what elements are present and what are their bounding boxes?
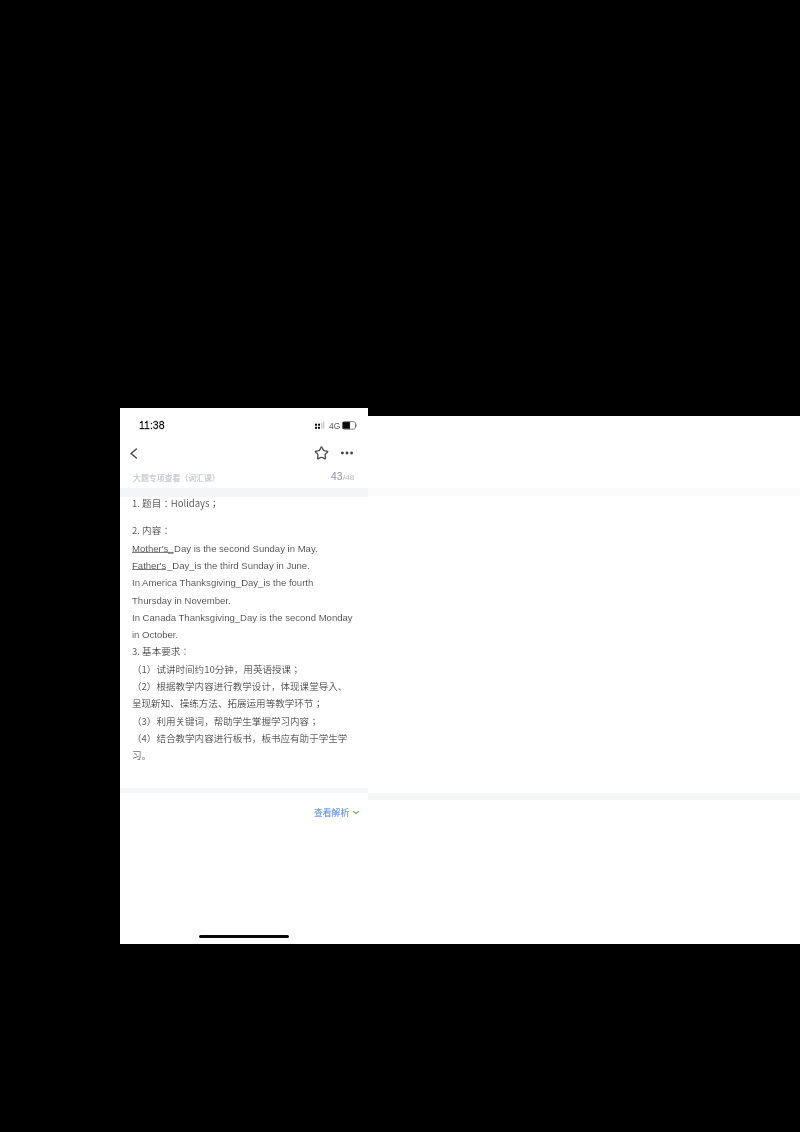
staticText: 3. 基本要求： <box>132 644 190 658</box>
staticText: 1. 题目：Holidays； <box>132 496 220 510</box>
button[interactable]: More options <box>335 441 359 465</box>
staticText: In America Thanksgiving_Day_is the fourt… <box>132 577 314 588</box>
button[interactable]: 大题专项查看（词汇课） <box>133 468 220 487</box>
button[interactable]: 43 <box>331 467 355 486</box>
staticText: /48 <box>343 473 355 482</box>
staticText: 查看解析 <box>314 806 350 819</box>
staticText: in October. <box>132 629 179 640</box>
staticText: （2）根据教学内容进行教学设计，体现课堂导入、 <box>132 679 348 693</box>
staticText: 2. 内容： <box>132 523 171 537</box>
staticText: （1）试讲时间约10分钟，用英语授课； <box>132 662 301 676</box>
staticText: Day is the second Sunday in May. <box>174 543 318 554</box>
staticText: 4G <box>329 421 341 430</box>
staticText: Mother's_ <box>132 543 174 554</box>
staticText: （4）结合教学内容进行板书，板书应有助于学生学 <box>132 731 348 745</box>
button[interactable]: 查看解析 <box>310 802 363 823</box>
staticText: Thursday in November. <box>132 595 231 606</box>
button[interactable]: Back <box>121 441 145 465</box>
staticText: 11:38 <box>139 419 165 431</box>
staticText: 大题专项查看（词汇课） <box>133 472 220 483</box>
staticText: 习。 <box>132 748 152 762</box>
staticText: 43 <box>331 471 343 482</box>
staticText: （3）利用关键词，帮助学生掌握学习内容； <box>132 714 319 728</box>
staticText: 呈现新知、操练方法、拓展运用等教学环节； <box>132 696 323 710</box>
staticText: Father's <box>132 560 167 571</box>
staticText: In Canada Thanksgiving_Day is the second… <box>132 612 353 623</box>
staticText: _Day_is the third Sunday in June. <box>167 560 310 571</box>
button[interactable]: Favorite <box>309 441 333 465</box>
